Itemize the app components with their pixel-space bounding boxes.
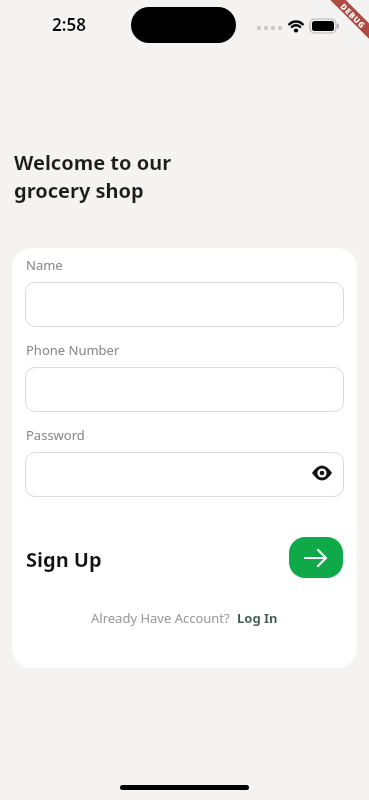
staticText: Welcome to our grocery shop: [14, 149, 172, 203]
staticText: DEBUG: [339, 1, 368, 31]
staticText: Name: [26, 256, 63, 274]
staticText: Password: [26, 426, 85, 444]
staticText: Log In: [237, 609, 278, 627]
staticText: Sign Up: [26, 546, 102, 573]
staticText: Already Have Account?: [91, 609, 237, 627]
staticText: 2:58: [52, 13, 86, 36]
staticText: Phone Number: [26, 341, 120, 359]
